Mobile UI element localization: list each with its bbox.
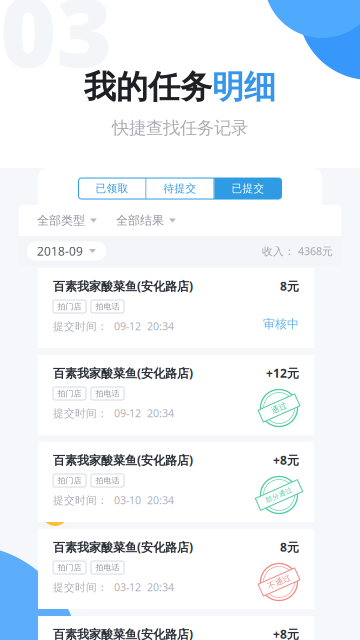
staticText: 8元 (280, 539, 299, 555)
button[interactable]: 已提交 (214, 178, 281, 199)
staticText: 待提交 (163, 182, 196, 195)
button[interactable]: 百素我家酸菜鱼(安化路店) (38, 268, 314, 348)
staticText: 拍电话 (95, 476, 119, 485)
staticText: 拍电话 (95, 563, 119, 572)
staticText: 提交时间： 09-12 20:34 (53, 319, 174, 333)
staticText: 提交时间： 03-12 20:34 (53, 580, 174, 594)
staticText: 提交时间： 03-10 20:34 (53, 493, 174, 507)
staticText: 拍门店 (57, 563, 81, 572)
staticText: +8元 (273, 626, 299, 640)
staticText: 快捷查找任务记录 (112, 117, 248, 139)
staticText: 拍门店 (57, 476, 81, 485)
staticText: +12元 (266, 365, 299, 381)
button[interactable]: 待提交 (146, 178, 213, 199)
staticText: 百素我家酸菜鱼(安化路店) (53, 626, 193, 640)
staticText: 拍电话 (95, 389, 119, 398)
staticText: 百素我家酸菜鱼(安化路店) (53, 452, 193, 468)
staticText: 8元 (280, 278, 299, 294)
staticText: 百素我家酸菜鱼(安化路店) (53, 539, 193, 555)
button[interactable]: 百素我家酸菜鱼(安化路店) (38, 616, 314, 640)
button[interactable]: 百素我家酸菜鱼(安化路店) (38, 355, 314, 435)
staticText: 全部结果 (116, 213, 164, 228)
staticText: 已领取 (95, 182, 128, 195)
staticText: 不通过 (267, 577, 291, 587)
staticText: 明细 (212, 67, 276, 107)
staticText: 拍电话 (95, 302, 119, 311)
staticText: 我的任务 (84, 67, 212, 107)
staticText: 提交时间： 09-12 20:34 (53, 406, 174, 420)
staticText: 2018-09 (37, 243, 83, 259)
staticText: 拍门店 (57, 302, 81, 311)
button[interactable]: 全部结果 (116, 213, 176, 228)
button[interactable]: 百素我家酸菜鱼(安化路店) (38, 529, 314, 609)
staticText: 通过 (271, 403, 287, 413)
staticText: 03 (0, 0, 112, 94)
staticText: 部分通过 (265, 491, 293, 499)
staticText: 全部类型 (37, 213, 85, 228)
staticText: 百素我家酸菜鱼(安化路店) (53, 365, 193, 381)
staticText: 审核中 (263, 317, 299, 331)
button[interactable]: 2018-09 (27, 241, 106, 260)
button[interactable]: 百素我家酸菜鱼(安化路店) (38, 442, 314, 522)
staticText: +8元 (273, 452, 299, 468)
staticText: 已提交 (231, 182, 264, 195)
staticText: 拍门店 (57, 389, 81, 398)
button[interactable]: 全部类型 (37, 213, 97, 228)
button[interactable]: 已领取 (78, 178, 145, 199)
staticText: 收入： 4368元 (262, 244, 333, 258)
staticText: 百素我家酸菜鱼(安化路店) (53, 278, 193, 294)
